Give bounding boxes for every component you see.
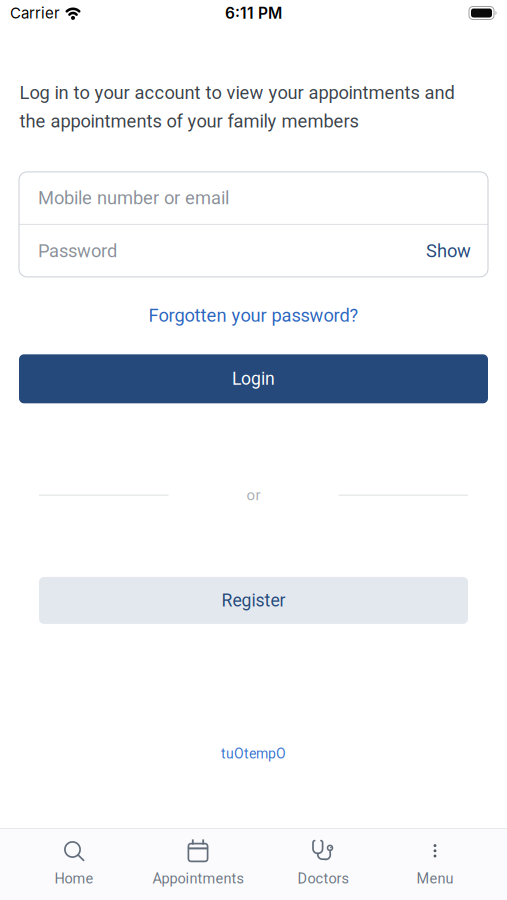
- staticText: Menu: [416, 870, 453, 887]
- button[interactable]: Doctors: [297, 839, 348, 887]
- staticText: tuOtempO: [221, 746, 286, 762]
- button[interactable]: Password: [19, 225, 488, 277]
- button[interactable]: Home: [54, 839, 93, 887]
- staticText: Home: [54, 870, 93, 887]
- staticText: Login: [232, 368, 275, 389]
- staticText: Log in to your account to view your appo…: [19, 82, 454, 103]
- staticText: Password: [38, 240, 117, 262]
- staticText: or: [246, 486, 260, 504]
- staticText: Appointments: [152, 870, 243, 887]
- staticText: Carrier: [10, 4, 60, 22]
- staticText: Doctors: [297, 870, 348, 887]
- button[interactable]: tuOtempO: [221, 746, 286, 762]
- staticText: Mobile number or email: [38, 187, 229, 209]
- button[interactable]: Menu: [416, 839, 453, 887]
- staticText: Forgotten your password?: [148, 305, 358, 326]
- staticText: Show: [426, 240, 471, 262]
- staticText: the appointments of your family members: [19, 110, 358, 132]
- button[interactable]: Mobile number or email: [19, 172, 488, 224]
- staticText: Register: [221, 590, 285, 611]
- button[interactable]: Forgotten your password?: [148, 305, 358, 326]
- button[interactable]: Show: [426, 240, 471, 262]
- staticText: 6:11 PM: [225, 4, 282, 22]
- button[interactable]: Login: [19, 354, 488, 403]
- button[interactable]: Appointments: [152, 839, 243, 887]
- button[interactable]: Register: [39, 577, 468, 624]
